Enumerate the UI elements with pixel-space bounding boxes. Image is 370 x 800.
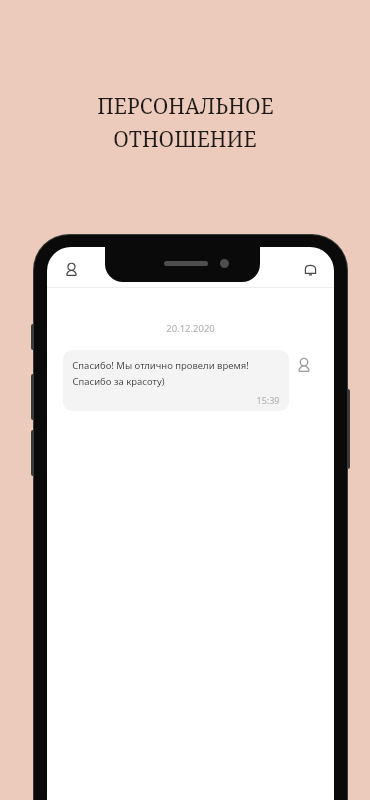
staticText: 20.12.2020	[166, 322, 215, 335]
staticText: Спасибо за красоту)	[72, 375, 165, 388]
staticText: ОТНОШЕНИЕ	[113, 125, 257, 154]
staticText: ПЕРСОНАЛЬНОЕ	[97, 92, 274, 121]
staticText: 15:39	[256, 394, 280, 406]
button[interactable]: Profile	[54, 252, 88, 286]
staticText: Спасибо! Мы отлично провели время!	[72, 359, 249, 372]
button[interactable]: Спасибо! Мы отлично провели время!	[63, 350, 289, 411]
button[interactable]: Notifications	[293, 252, 327, 286]
